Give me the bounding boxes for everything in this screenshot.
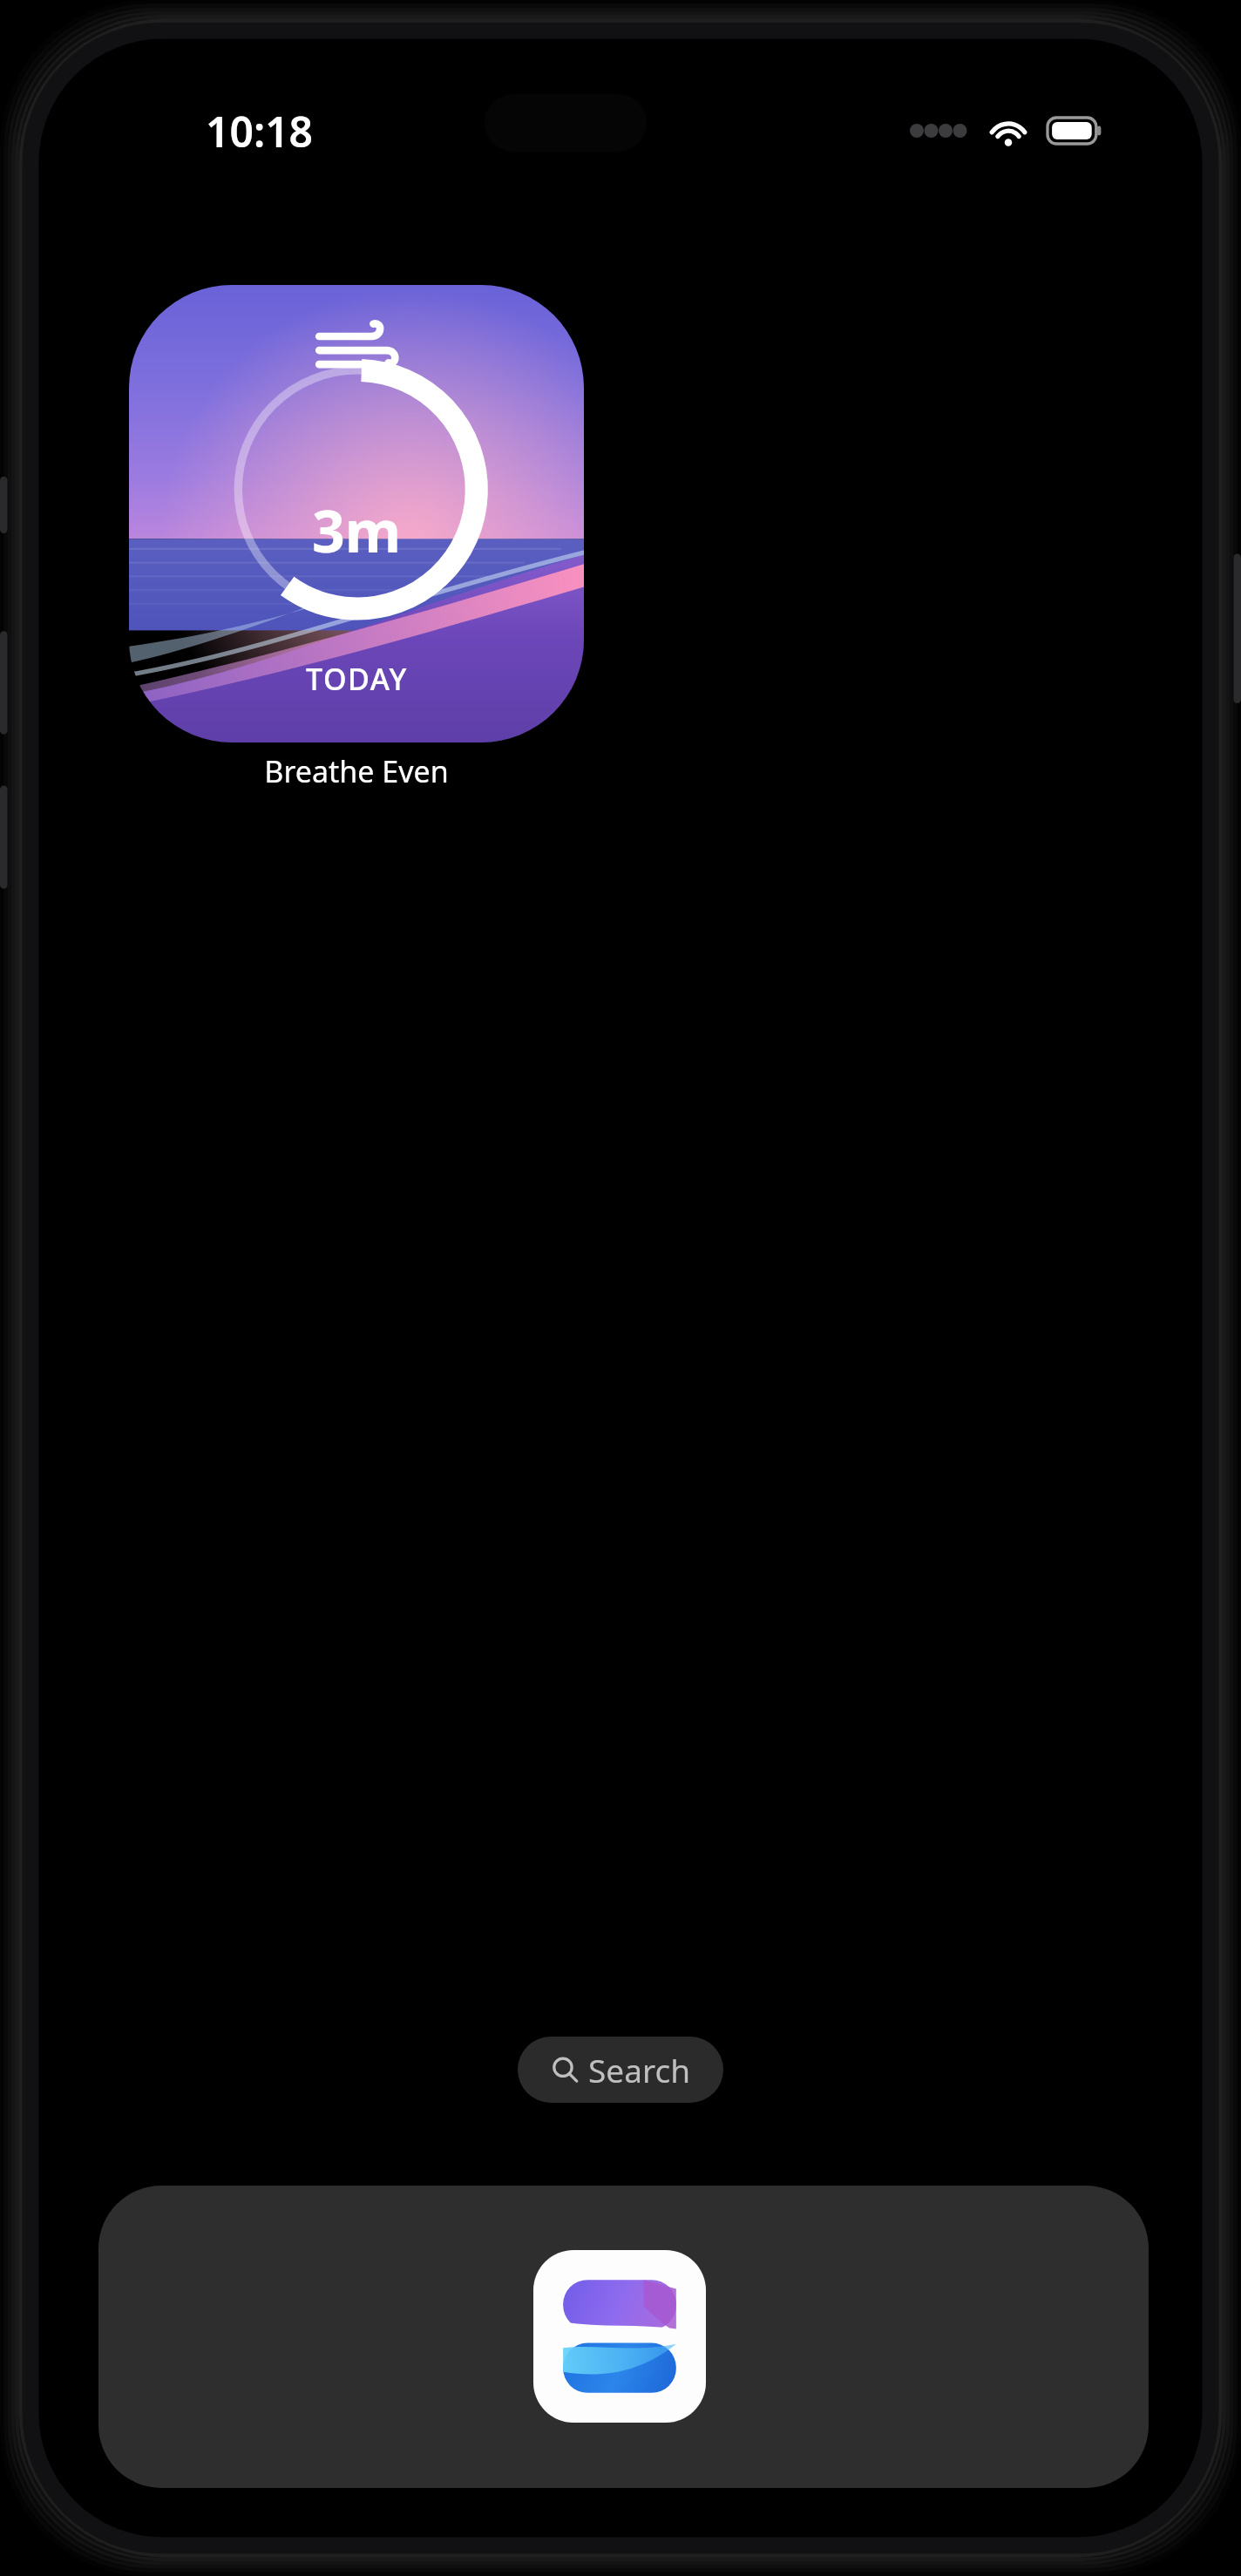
button[interactable]: Breathe Even app <box>533 2250 706 2423</box>
staticText: 10:18 <box>206 103 314 159</box>
staticText: 3m <box>312 491 402 569</box>
button[interactable]: Breathe Even widget, 3 minutes today <box>129 285 584 742</box>
button[interactable]: Search <box>518 2037 723 2103</box>
staticText: Breathe Even <box>129 751 584 2576</box>
staticText: Search <box>588 2048 691 2091</box>
staticText: TODAY <box>306 659 408 699</box>
